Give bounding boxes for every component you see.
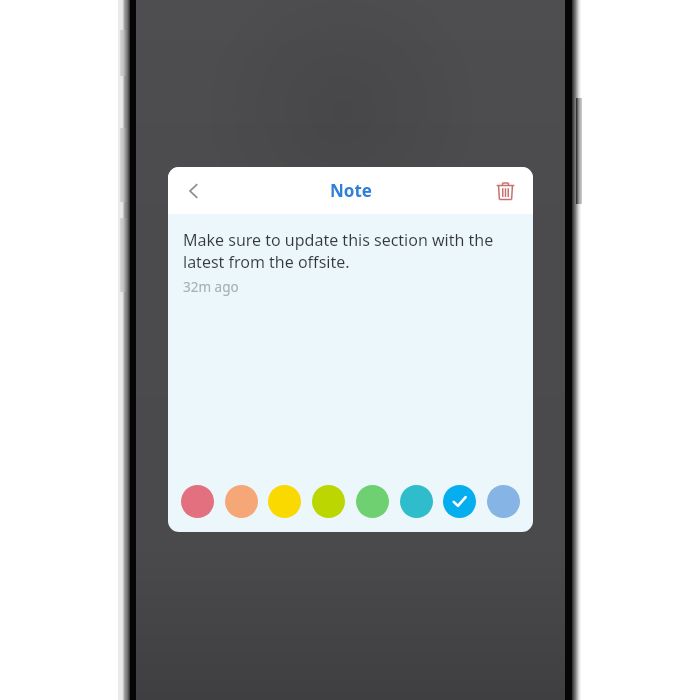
button[interactable]: Colour 8 bbox=[487, 485, 520, 518]
button[interactable]: Delete note bbox=[487, 173, 523, 209]
button[interactable]: Colour 1 bbox=[181, 485, 214, 518]
button[interactable]: Colour 6 bbox=[400, 485, 433, 518]
staticText: Note bbox=[330, 179, 372, 202]
button[interactable]: Colour 2 bbox=[225, 485, 258, 518]
button[interactable]: Colour 4 bbox=[312, 485, 345, 518]
staticText: 32m ago bbox=[183, 278, 239, 296]
button[interactable]: Colour 5 bbox=[356, 485, 389, 518]
button[interactable]: Back bbox=[174, 171, 214, 211]
staticText: Make sure to update this section with th… bbox=[183, 229, 518, 273]
button[interactable]: Colour 3 bbox=[268, 485, 301, 518]
button[interactable]: Colour 7, selected bbox=[443, 485, 476, 518]
